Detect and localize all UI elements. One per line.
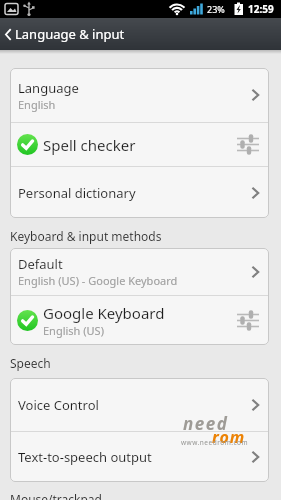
staticText: Mouse/trackpad (10, 491, 102, 500)
button[interactable]: Language & input (0, 18, 281, 50)
button[interactable]: Google Keyboard (10, 296, 269, 345)
staticText: need (183, 412, 229, 435)
staticText: Spell checker (43, 135, 136, 155)
button[interactable]: Voice Control (10, 378, 269, 431)
staticText: 12:59 (248, 2, 274, 16)
button[interactable]: Spell checker (10, 123, 269, 166)
staticText: Language (18, 79, 79, 97)
button[interactable]: Language (10, 68, 269, 122)
staticText: Speech (10, 355, 51, 371)
staticText: English (18, 97, 56, 112)
staticText: English (US) - Google Keyboard (18, 273, 178, 288)
staticText: Default (18, 255, 63, 273)
staticText: English (US) (43, 323, 104, 338)
staticText: Keyboard & input methods (10, 228, 162, 244)
button[interactable]: Text-to-speech output (10, 432, 269, 482)
button[interactable]: Default (10, 248, 269, 295)
staticText: Text-to-speech output (18, 448, 152, 466)
staticText: Google Keyboard (43, 303, 165, 323)
staticText: Language & input (15, 25, 125, 43)
staticText: Personal dictionary (18, 184, 136, 202)
staticText: www.needrom.com (181, 438, 249, 447)
staticText: 23% (207, 3, 225, 15)
button[interactable]: Personal dictionary (10, 167, 269, 218)
staticText: Voice Control (18, 396, 99, 414)
staticText: rom (212, 426, 246, 448)
